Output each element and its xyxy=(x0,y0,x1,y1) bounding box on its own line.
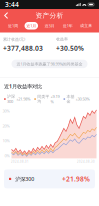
staticText: +9.19% xyxy=(50,94,59,104)
staticText: +30.50% xyxy=(76,96,90,102)
staticText: 近3月 xyxy=(44,23,54,28)
staticText: 成立来 xyxy=(80,23,92,28)
staticText: 资产分析 xyxy=(35,11,63,20)
staticText: +30.50% xyxy=(56,44,84,52)
staticText: 2024-08-01 xyxy=(11,160,29,163)
staticText: 0% xyxy=(4,153,9,158)
staticText: 本基金 xyxy=(66,94,74,104)
staticText: 累计收益(元) xyxy=(3,36,25,42)
button[interactable]: 近1周 xyxy=(4,22,22,29)
staticText: 30% xyxy=(2,108,9,114)
button[interactable]: 近1月收益率跑赢了98.99%的同类基金 xyxy=(11,60,87,68)
staticText: 近1年 xyxy=(63,23,73,28)
button[interactable]: 近1月 xyxy=(22,22,40,29)
staticText: 2024-08-30 xyxy=(77,160,95,163)
staticText: +21.98% xyxy=(62,174,90,183)
staticText: 沪深300 xyxy=(7,94,15,104)
staticText: 近1月 xyxy=(26,23,36,28)
button[interactable]: 沪深300 xyxy=(4,169,95,188)
button[interactable]: 近1年 xyxy=(59,22,77,29)
staticText: +21.98% xyxy=(16,96,30,102)
staticText: 近1月收益率对比 xyxy=(4,83,42,90)
staticText: 10% xyxy=(2,138,9,143)
staticText: 近1周 xyxy=(8,23,18,28)
staticText: 收益率 xyxy=(56,37,68,42)
button[interactable]: Back xyxy=(0,9,13,22)
staticText: 近1月收益率跑赢了98.99%的同类基金 xyxy=(16,61,82,67)
staticText: 同类平均 xyxy=(37,94,49,104)
staticText: 3:44 xyxy=(5,0,19,9)
button[interactable]: 成立来 xyxy=(77,22,95,29)
button[interactable]: 近3月 xyxy=(40,22,59,29)
staticText: +377,488.03 xyxy=(3,44,43,53)
staticText: 沪深300 xyxy=(11,175,34,182)
staticText: 20% xyxy=(2,123,9,129)
